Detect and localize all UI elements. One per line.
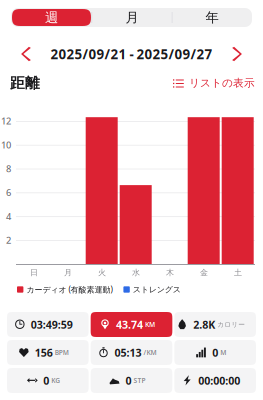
staticText: 0 — [125, 373, 131, 388]
staticText: 12 — [1, 115, 11, 127]
staticText: BPM — [55, 348, 69, 357]
staticText: 火 — [98, 268, 106, 277]
button[interactable]: リストの表示 — [173, 74, 255, 92]
staticText: 土 — [234, 268, 242, 277]
staticText: KG — [51, 376, 60, 385]
button[interactable]: 43.74 — [91, 312, 172, 337]
button[interactable]: 156 — [7, 340, 89, 365]
staticText: カーディオ (有酸素運動) — [26, 284, 112, 295]
staticText: ストレングス — [133, 285, 181, 294]
staticText: /KM — [143, 348, 156, 357]
staticText: 0 — [43, 373, 49, 388]
staticText: 43.74 — [116, 317, 143, 332]
button[interactable]: 03:49:59 — [7, 312, 89, 337]
staticText: 月 — [125, 9, 138, 26]
staticText: 日 — [30, 268, 38, 277]
staticText: カロリー — [217, 320, 245, 329]
staticText: 03:49:59 — [31, 317, 73, 332]
staticText: 6 — [6, 186, 11, 199]
button[interactable]: 0 — [7, 368, 89, 393]
button[interactable]: 05:13 — [91, 340, 172, 365]
button[interactable]: Previous week — [15, 44, 35, 64]
staticText: 00:00:00 — [198, 373, 240, 388]
staticText: 水 — [132, 268, 140, 277]
staticText: 0 — [212, 345, 218, 360]
staticText: M — [220, 348, 226, 357]
staticText: 4 — [6, 210, 11, 222]
button[interactable]: 0 — [174, 340, 256, 365]
staticText: 週 — [45, 9, 58, 26]
button[interactable]: 週 — [12, 9, 91, 26]
button[interactable]: 00:00:00 — [174, 368, 256, 393]
staticText: 05:13 — [114, 345, 141, 360]
staticText: 年 — [205, 9, 218, 26]
button[interactable]: 月 — [92, 8, 172, 27]
staticText: 木 — [166, 268, 174, 277]
staticText: KM — [145, 320, 155, 329]
staticText: リストの表示 — [189, 76, 255, 89]
staticText: 2.8K — [193, 317, 215, 332]
button[interactable]: 0 — [91, 368, 172, 393]
staticText: 8 — [6, 162, 11, 175]
button[interactable]: 年 — [172, 8, 252, 27]
staticText: STP — [133, 376, 145, 385]
staticText: 10 — [1, 139, 11, 151]
staticText: 2 — [6, 234, 11, 246]
staticText: 月 — [64, 268, 72, 277]
staticText: 距離 — [10, 74, 40, 92]
staticText: 156 — [35, 345, 53, 360]
button[interactable]: Next week — [228, 44, 248, 64]
button[interactable]: 2.8K — [174, 312, 256, 337]
staticText: 金 — [200, 268, 208, 277]
staticText: 2025/09/21 - 2025/09/27 — [50, 45, 212, 63]
